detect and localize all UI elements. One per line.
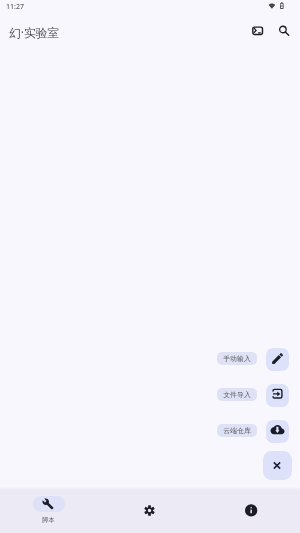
button[interactable]: 文件导入: [266, 384, 289, 407]
button[interactable]: About: [200, 488, 300, 533]
staticText: 脚本: [42, 516, 55, 524]
staticText: 云端仓库: [223, 426, 251, 435]
staticText: 手动输入: [223, 354, 251, 363]
button[interactable]: 云端仓库: [217, 424, 257, 437]
button[interactable]: 云端仓库: [266, 420, 289, 443]
button[interactable]: Search: [277, 23, 293, 39]
button[interactable]: 文件导入: [217, 388, 257, 401]
staticText: 11:27: [6, 2, 24, 12]
staticText: 幻·实验室: [9, 24, 60, 40]
button[interactable]: 手动输入: [217, 352, 257, 365]
button[interactable]: Close menu: [263, 451, 292, 480]
staticText: 文件导入: [223, 390, 251, 399]
button[interactable]: 手动输入: [266, 348, 289, 371]
button[interactable]: Settings: [100, 488, 200, 533]
button[interactable]: Terminal: [250, 23, 266, 39]
button[interactable]: 脚本: [0, 488, 100, 533]
